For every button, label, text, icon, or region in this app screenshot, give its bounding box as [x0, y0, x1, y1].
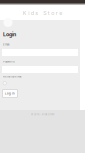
staticText: Kids Store	[23, 10, 62, 16]
button[interactable]: Log in	[2, 89, 17, 97]
staticText: © 2016 - Kids Store	[31, 113, 54, 116]
button[interactable]: Remember me	[3, 81, 6, 85]
staticText: Email	[3, 43, 10, 46]
staticText: RememberMe	[3, 75, 22, 78]
staticText: Log in	[5, 92, 15, 95]
staticText: Login	[3, 31, 16, 37]
staticText: Password	[3, 60, 15, 63]
